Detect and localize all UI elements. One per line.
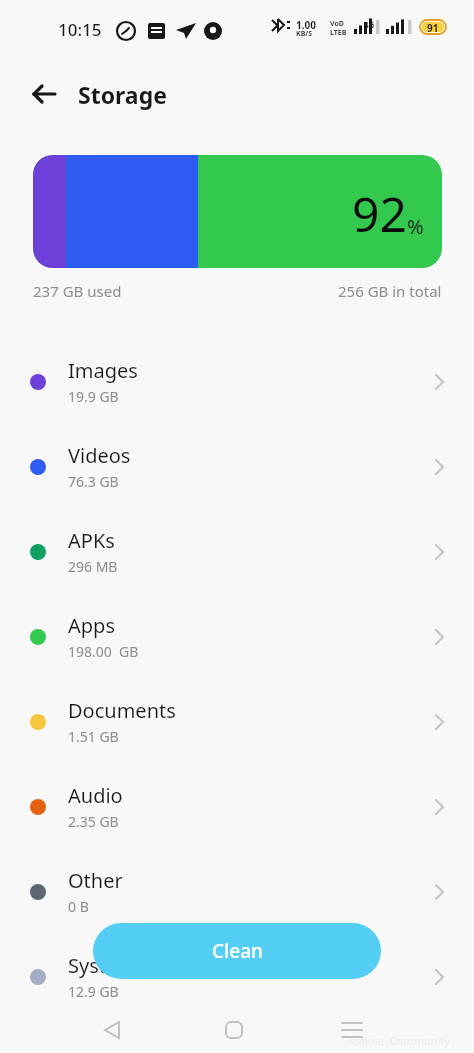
staticText: 10:15 (58, 18, 102, 41)
staticText: Audio (68, 782, 123, 809)
staticText: Documents (68, 697, 176, 724)
staticText: % (407, 213, 424, 240)
staticText: Storage (78, 79, 167, 110)
staticText: Videos (68, 442, 131, 469)
button[interactable]: Videos (0, 424, 474, 509)
staticText: System (68, 952, 136, 979)
staticText: 19.9 GB (68, 387, 119, 406)
button[interactable]: APKs (0, 509, 474, 594)
staticText: 2.35 GB (68, 812, 119, 831)
staticText: KB/S (296, 29, 313, 39)
staticText: 76.3 GB (68, 472, 119, 491)
staticText: Apps (68, 612, 115, 639)
staticText: 198.00 GB (68, 642, 139, 661)
button[interactable]: Audio (0, 764, 474, 849)
staticText: 1.00 (296, 18, 316, 32)
button[interactable]: Back (88, 1006, 136, 1053)
staticText: 12.9 GB (68, 982, 119, 1001)
staticText: 1.51 GB (68, 727, 119, 746)
button[interactable]: System (0, 934, 474, 1019)
staticText: 92 (352, 181, 407, 246)
button[interactable]: Home (210, 1006, 258, 1053)
staticText: Clean (212, 938, 263, 964)
staticText: APKs (68, 527, 115, 554)
staticText: LTEB (330, 28, 347, 38)
staticText: 237 GB used (33, 281, 122, 301)
staticText: VoD (330, 19, 344, 29)
staticText: realme Community (348, 1033, 450, 1048)
staticText: 256 GB in total (338, 281, 442, 301)
button[interactable]: Documents (0, 679, 474, 764)
button[interactable]: Back (22, 72, 66, 116)
button[interactable]: Clean (93, 923, 381, 979)
staticText: 0 B (68, 897, 89, 916)
staticText: Images (68, 357, 138, 384)
button[interactable]: Recent apps (328, 1006, 376, 1053)
button[interactable]: Other (0, 849, 474, 934)
staticText: 4G (364, 19, 375, 30)
staticText: 296 MB (68, 557, 118, 576)
staticText: Other (68, 867, 123, 894)
button[interactable]: 92 (33, 155, 442, 268)
button[interactable]: Apps (0, 594, 474, 679)
staticText: 91 (427, 21, 439, 35)
button[interactable]: Images (0, 339, 474, 424)
